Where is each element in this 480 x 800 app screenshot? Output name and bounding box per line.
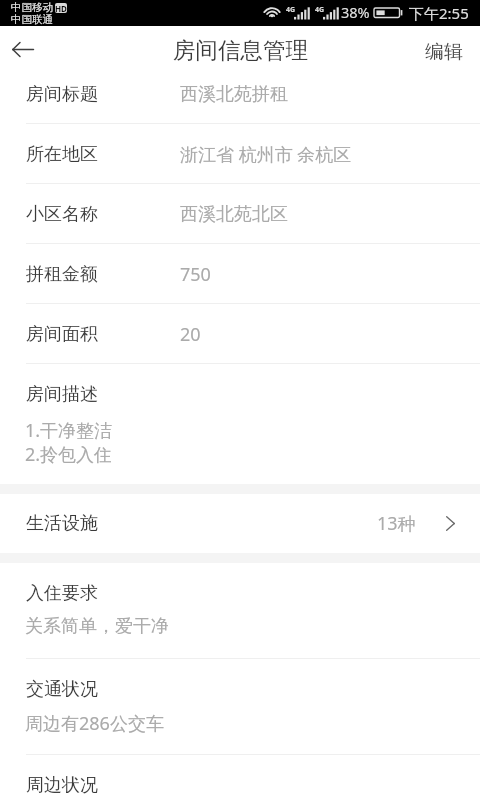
button[interactable]: 周边状况 xyxy=(0,755,480,800)
button[interactable]: 小区名称 xyxy=(0,184,480,244)
staticText: 13种 xyxy=(377,511,416,536)
staticText: 入住要求 xyxy=(26,582,98,605)
staticText: 关系简单，爱干净 xyxy=(25,615,169,638)
staticText: 1.干净整洁 xyxy=(25,418,113,443)
staticText: 拼租金额 xyxy=(26,263,98,286)
staticText: 中国联通 xyxy=(11,13,53,26)
button[interactable]: 房间描述 xyxy=(0,364,480,484)
staticText: 38% xyxy=(341,2,370,22)
staticText: 750 xyxy=(180,262,211,287)
staticText: 生活设施 xyxy=(26,512,98,535)
staticText: 4G xyxy=(315,5,325,15)
button[interactable]: 入住要求 xyxy=(0,563,480,659)
staticText: 周边有286公交车 xyxy=(25,711,164,736)
button[interactable]: 生活设施 xyxy=(0,494,480,553)
button[interactable]: 房间标题 xyxy=(0,64,480,124)
staticText: 交通状况 xyxy=(26,678,98,701)
staticText: 浙江省 杭州市 余杭区 xyxy=(180,142,352,167)
staticText: 西溪北苑北区 xyxy=(180,203,288,226)
button[interactable]: 拼租金额 xyxy=(0,244,480,304)
staticText: 房间面积 xyxy=(26,323,98,346)
staticText: 20 xyxy=(180,322,201,347)
button[interactable]: 编辑 xyxy=(409,32,480,70)
staticText: 编辑 xyxy=(425,40,463,62)
staticText: 中国移动 xyxy=(11,1,53,14)
staticText: 小区名称 xyxy=(26,203,98,226)
staticText: 周边状况 xyxy=(26,774,98,797)
staticText: 西溪北苑拼租 xyxy=(180,83,288,106)
staticText: 下午2:55 xyxy=(409,3,469,23)
staticText: 4G xyxy=(286,5,296,15)
staticText: 2.拎包入住 xyxy=(25,442,113,467)
button[interactable]: 所在地区 xyxy=(0,124,480,184)
button[interactable]: Back xyxy=(0,30,46,68)
button[interactable]: 房间面积 xyxy=(0,304,480,364)
button[interactable]: 交通状况 xyxy=(0,659,480,755)
staticText: 所在地区 xyxy=(26,143,98,166)
staticText: 房间标题 xyxy=(26,83,98,106)
staticText: 房间描述 xyxy=(26,383,98,406)
staticText: 房间信息管理 xyxy=(173,36,308,64)
staticText: HD xyxy=(55,3,67,13)
